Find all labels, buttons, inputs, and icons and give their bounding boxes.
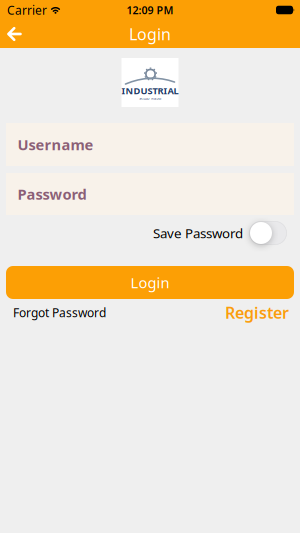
staticText: 12:09 PM — [126, 3, 173, 17]
staticText: Password — [17, 184, 86, 204]
button[interactable]: Back — [0, 20, 22, 48]
staticText: Carrier — [7, 2, 47, 18]
staticText: Login — [129, 23, 171, 45]
button[interactable]: Username — [6, 123, 294, 166]
button[interactable]: Login — [6, 266, 294, 299]
button[interactable]: Password — [6, 173, 294, 215]
button[interactable]: Save Password — [249, 221, 287, 245]
button[interactable]: Forgot Password — [13, 305, 106, 321]
staticText: Username — [17, 135, 93, 154]
staticText: Register — [225, 302, 289, 323]
staticText: Forgot Password — [13, 305, 106, 321]
button[interactable]: Register — [225, 302, 289, 323]
staticText: INDUSTRIAL — [121, 84, 178, 97]
staticText: Login — [130, 273, 169, 292]
staticText: Save Password — [153, 224, 243, 242]
staticText: SKILLED TRADES — [139, 97, 161, 100]
